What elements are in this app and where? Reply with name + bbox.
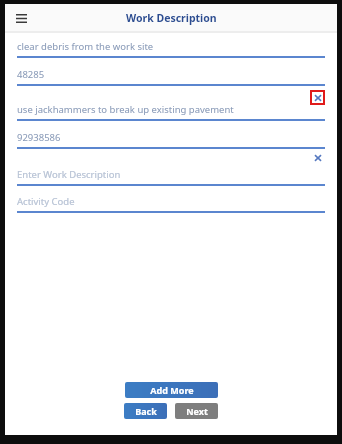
button[interactable]: Open navigation menu [11, 8, 31, 28]
staticText: Next [186, 405, 208, 417]
button[interactable]: Activity Code [17, 195, 325, 213]
button[interactable]: Next [175, 403, 218, 419]
staticText: 92938586 [17, 131, 61, 144]
staticText: 48285 [17, 68, 45, 81]
staticText: Enter Work Description [17, 168, 121, 181]
button[interactable]: Enter Work Description [17, 168, 325, 186]
button[interactable]: Remove work description row [310, 90, 325, 105]
button[interactable]: Back [124, 403, 167, 419]
staticText: Activity Code [17, 195, 75, 208]
staticText: Add More [150, 384, 194, 396]
button[interactable]: use jackhammers to break up existing pav… [17, 103, 325, 121]
staticText: use jackhammers to break up existing pav… [17, 103, 234, 116]
button[interactable]: 92938586 [17, 131, 325, 149]
staticText: Back [135, 405, 157, 417]
button[interactable]: clear debris from the work site [17, 40, 325, 58]
button[interactable]: Remove work description row [311, 151, 325, 165]
button[interactable]: Add More [125, 382, 218, 398]
staticText: Work Description [126, 11, 217, 25]
button[interactable]: 48285 [17, 68, 325, 86]
staticText: clear debris from the work site [17, 40, 154, 53]
